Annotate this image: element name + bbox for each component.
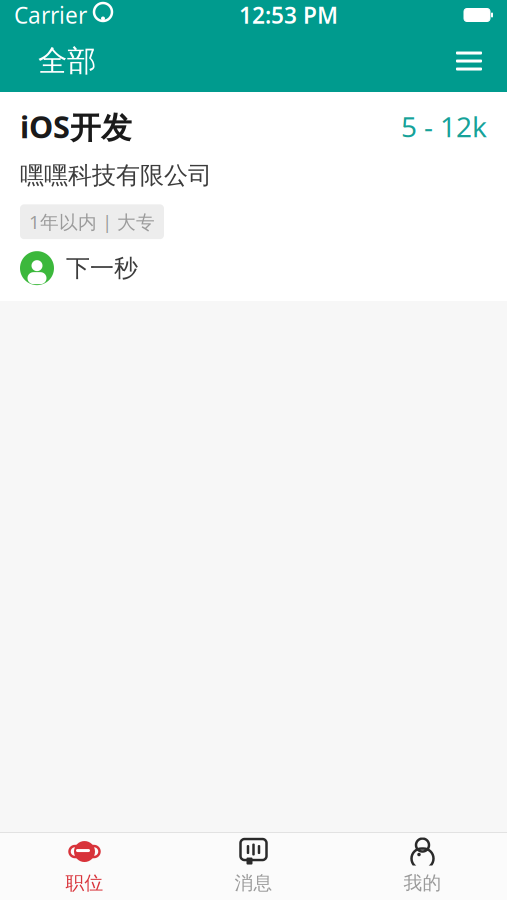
button[interactable]: iOS开发: [0, 92, 507, 301]
staticText: 12:53 PM: [239, 0, 338, 30]
staticText: 下一秒: [66, 253, 138, 283]
button[interactable]: 职位: [0, 832, 169, 900]
staticText: 我的: [403, 871, 441, 894]
staticText: 1年以内 | 大专: [29, 209, 155, 234]
staticText: Carrier: [14, 0, 87, 30]
staticText: 职位: [65, 871, 103, 894]
staticText: 5 - 12k: [401, 108, 487, 145]
staticText: 消息: [234, 871, 272, 894]
staticText: 全部: [38, 43, 96, 79]
button[interactable]: 消息: [169, 832, 338, 900]
button[interactable]: Menu: [447, 39, 491, 83]
button[interactable]: 我的: [338, 832, 507, 900]
staticText: iOS开发: [20, 106, 132, 147]
staticText: 嘿嘿科技有限公司: [20, 161, 212, 190]
